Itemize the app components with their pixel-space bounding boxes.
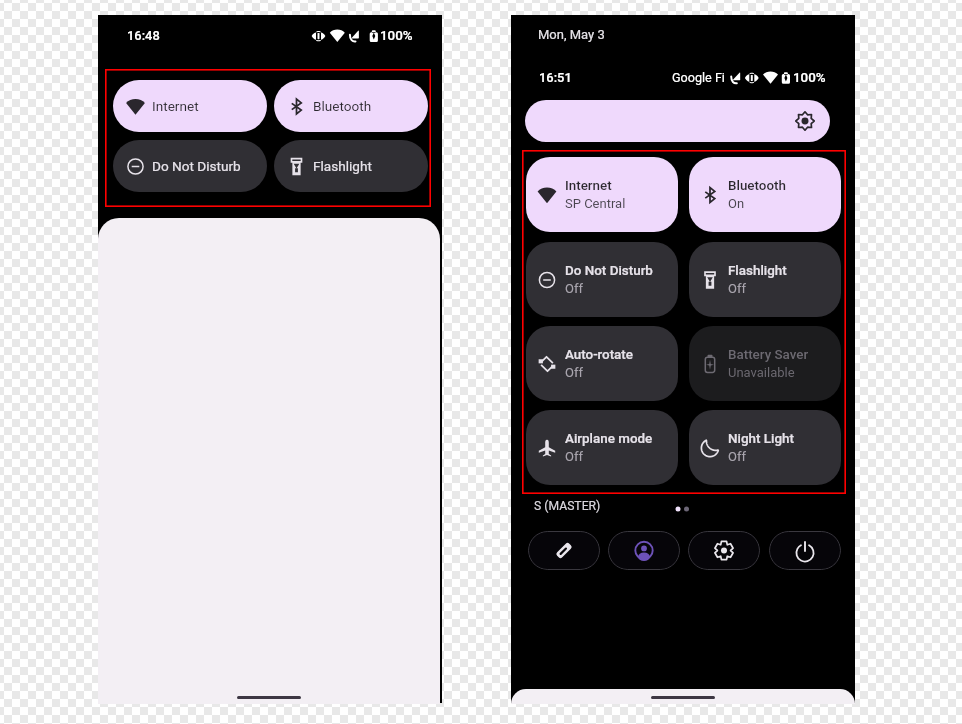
staticText: Off	[565, 365, 583, 380]
staticText: 100%	[380, 28, 413, 44]
staticText: 16:51	[539, 70, 572, 85]
button[interactable]: Internet	[113, 80, 267, 132]
staticText: Night Light	[728, 431, 794, 447]
staticText: Do Not Disturb	[565, 263, 653, 279]
staticText: Auto-rotate	[565, 347, 634, 363]
staticText: Flashlight	[728, 263, 787, 279]
button[interactable]: Auto-rotate	[526, 326, 678, 401]
button[interactable]: Night Light	[689, 410, 841, 485]
staticText: Bluetooth	[728, 178, 786, 194]
staticText: 100%	[793, 70, 826, 86]
staticText: 16:48	[127, 28, 160, 43]
staticText: SP Central	[565, 196, 626, 211]
staticText: Unavailable	[728, 365, 795, 380]
staticText: Off	[728, 281, 746, 296]
button[interactable]: Settings	[688, 531, 760, 570]
staticText: Do Not Disturb	[152, 158, 241, 174]
staticText: Internet	[152, 98, 199, 114]
staticText: Bluetooth	[313, 98, 372, 114]
button[interactable]: User account	[608, 531, 680, 570]
button[interactable]: Internet	[526, 157, 678, 232]
staticText: On	[728, 196, 745, 211]
button[interactable]: Bluetooth	[689, 157, 841, 232]
staticText: Internet	[565, 178, 612, 194]
staticText: Mon, May 3	[538, 27, 605, 42]
button[interactable]: Airplane mode	[526, 410, 678, 485]
button[interactable]: Battery Saver	[689, 326, 841, 401]
button[interactable]: Flashlight	[274, 140, 428, 192]
staticText: S (MASTER)	[534, 499, 601, 513]
button[interactable]: Brightness	[525, 100, 830, 142]
staticText: Off	[728, 449, 746, 464]
staticText: Off	[565, 281, 583, 296]
staticText: Google Fi	[672, 70, 725, 85]
button[interactable]: Power	[769, 531, 841, 570]
button[interactable]: Bluetooth	[274, 80, 428, 132]
button[interactable]: Edit	[528, 531, 600, 570]
staticText: Flashlight	[313, 158, 372, 174]
button[interactable]: Do Not Disturb	[113, 140, 267, 192]
button[interactable]: Do Not Disturb	[526, 242, 678, 317]
staticText: Airplane mode	[565, 431, 653, 447]
staticText: Off	[565, 449, 583, 464]
staticText: Battery Saver	[728, 347, 809, 363]
button[interactable]: Flashlight	[689, 242, 841, 317]
